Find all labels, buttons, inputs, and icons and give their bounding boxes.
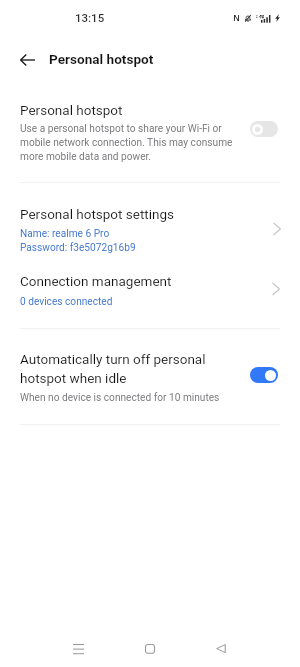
staticText: Personal hotspot xyxy=(20,102,123,118)
staticText: 13:15 xyxy=(75,11,105,24)
button[interactable]: Automatically turn off personal hotspot … xyxy=(0,345,300,424)
button[interactable]: Switch on xyxy=(250,367,278,383)
staticText: Password: f3e5072g16b9 xyxy=(20,242,136,254)
button[interactable]: Connection management xyxy=(0,263,300,308)
button[interactable]: Back xyxy=(201,629,241,667)
staticText: Personal hotspot xyxy=(49,51,154,67)
staticText: Connection management xyxy=(20,273,172,289)
button[interactable]: Recent apps xyxy=(58,629,99,667)
staticText: Personal hotspot settings xyxy=(20,206,175,222)
button[interactable]: Personal hotspot settings xyxy=(0,200,300,256)
staticText: 0 devices connected xyxy=(20,296,113,308)
button[interactable]: Back xyxy=(12,45,42,75)
button[interactable]: Switch off xyxy=(250,121,278,137)
staticText: Name: realme 6 Pro xyxy=(20,228,110,240)
staticText: Use a personal hotspot to share your Wi-… xyxy=(20,121,236,163)
staticText: Automatically turn off personal hotspot … xyxy=(20,349,220,387)
staticText: When no device is connected for 10 minut… xyxy=(20,392,220,404)
button[interactable]: Personal hotspot xyxy=(0,96,300,182)
button[interactable]: Home xyxy=(130,629,170,667)
